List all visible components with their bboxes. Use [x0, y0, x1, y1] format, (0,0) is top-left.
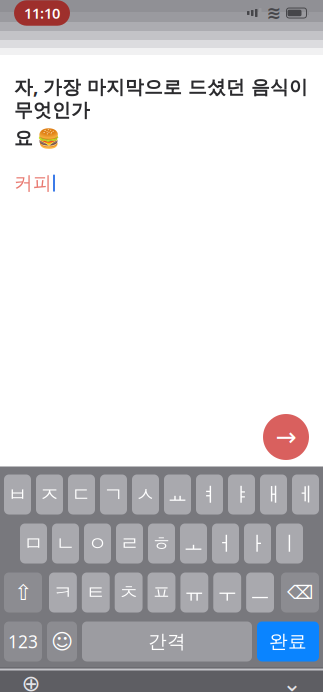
button[interactable]: ㅓ	[212, 523, 239, 563]
staticText: →	[275, 423, 296, 451]
button[interactable]: ㅌ	[82, 572, 110, 612]
button[interactable]: 간격	[82, 621, 252, 661]
button[interactable]: ㅇ	[84, 523, 111, 563]
staticText: ㅇ	[87, 531, 107, 556]
staticText: ㄴ	[55, 531, 75, 556]
staticText: 123	[8, 630, 38, 653]
staticText: ⊕	[21, 671, 40, 692]
staticText: ☺	[51, 629, 73, 654]
button[interactable]: ⇧	[4, 572, 42, 612]
button[interactable]: ㄷ	[68, 474, 95, 514]
button[interactable]: ㅛ	[164, 474, 191, 514]
button[interactable]: ☺	[47, 621, 77, 661]
staticText: ≋	[266, 3, 281, 23]
button[interactable]: 완료	[257, 621, 319, 661]
button[interactable]: ㅣ	[276, 523, 303, 563]
button[interactable]: ㅍ	[148, 572, 175, 612]
staticText: 자, 가장 마지막으로 드셨던 음식이 무엇인가	[14, 74, 308, 122]
staticText: ㅋ	[53, 580, 73, 605]
staticText: ㅈ	[39, 482, 59, 507]
staticText: ⌄	[282, 671, 301, 692]
button[interactable]: ㅎ	[148, 523, 175, 563]
staticText: ㄷ	[71, 482, 91, 507]
staticText: ㅂ	[7, 482, 27, 507]
button[interactable]: ㅕ	[196, 474, 223, 514]
button[interactable]: ⌫	[281, 572, 319, 612]
button[interactable]: Submit answer	[263, 414, 309, 460]
button[interactable]: ㄹ	[116, 523, 143, 563]
staticText: ㅏ	[247, 531, 267, 556]
button[interactable]: ㅂ	[4, 474, 31, 514]
staticText: ㄹ	[119, 531, 139, 556]
staticText: 요	[14, 127, 33, 150]
staticText: 11:10	[24, 3, 60, 23]
staticText: ㅎ	[151, 531, 171, 556]
staticText: ⇧	[14, 580, 32, 605]
button[interactable]: ㅗ	[180, 523, 207, 563]
staticText: ㅁ	[23, 531, 43, 556]
staticText: ㅛ	[167, 482, 187, 507]
staticText: 완료	[269, 630, 307, 653]
staticText: ㅠ	[184, 580, 204, 605]
button[interactable]: Switch keyboard language	[14, 670, 48, 692]
button[interactable]: Dictation	[275, 670, 309, 692]
staticText: ㅔ	[295, 482, 315, 507]
button[interactable]: ㄱ	[100, 474, 127, 514]
button[interactable]: ㅋ	[49, 572, 77, 612]
button[interactable]: ㅈ	[36, 474, 63, 514]
staticText: ㅗ	[183, 531, 203, 556]
staticText: ㅓ	[215, 531, 235, 556]
button[interactable]: 123	[4, 621, 42, 661]
staticText: ㅕ	[199, 482, 219, 507]
staticText: ㅌ	[86, 580, 106, 605]
staticText: ㅍ	[151, 580, 171, 605]
staticText: ㄱ	[103, 482, 123, 507]
button[interactable]: ㅜ	[213, 572, 241, 612]
staticText: ㅐ	[263, 482, 283, 507]
staticText: ⌫	[287, 582, 313, 603]
button[interactable]: ㄴ	[52, 523, 79, 563]
button[interactable]: ㅠ	[180, 572, 208, 612]
staticText: ㅜ	[217, 580, 237, 605]
staticText: ㅡ	[250, 580, 270, 605]
button[interactable]: ㅁ	[20, 523, 47, 563]
staticText: ㅑ	[231, 482, 251, 507]
staticText: ㅅ	[135, 482, 155, 507]
staticText: 🍔	[37, 127, 60, 149]
staticText: 간격	[148, 630, 186, 653]
staticText: ㅣ	[279, 531, 299, 556]
staticText: ㅊ	[119, 580, 139, 605]
button[interactable]: ㅡ	[246, 572, 274, 612]
button[interactable]: ㅑ	[228, 474, 255, 514]
button[interactable]: ㅏ	[244, 523, 271, 563]
button[interactable]: ㅅ	[132, 474, 159, 514]
button[interactable]: ㅔ	[292, 474, 319, 514]
button[interactable]: ㅐ	[260, 474, 287, 514]
staticText: 커피	[14, 172, 52, 194]
button[interactable]: ㅊ	[115, 572, 143, 612]
